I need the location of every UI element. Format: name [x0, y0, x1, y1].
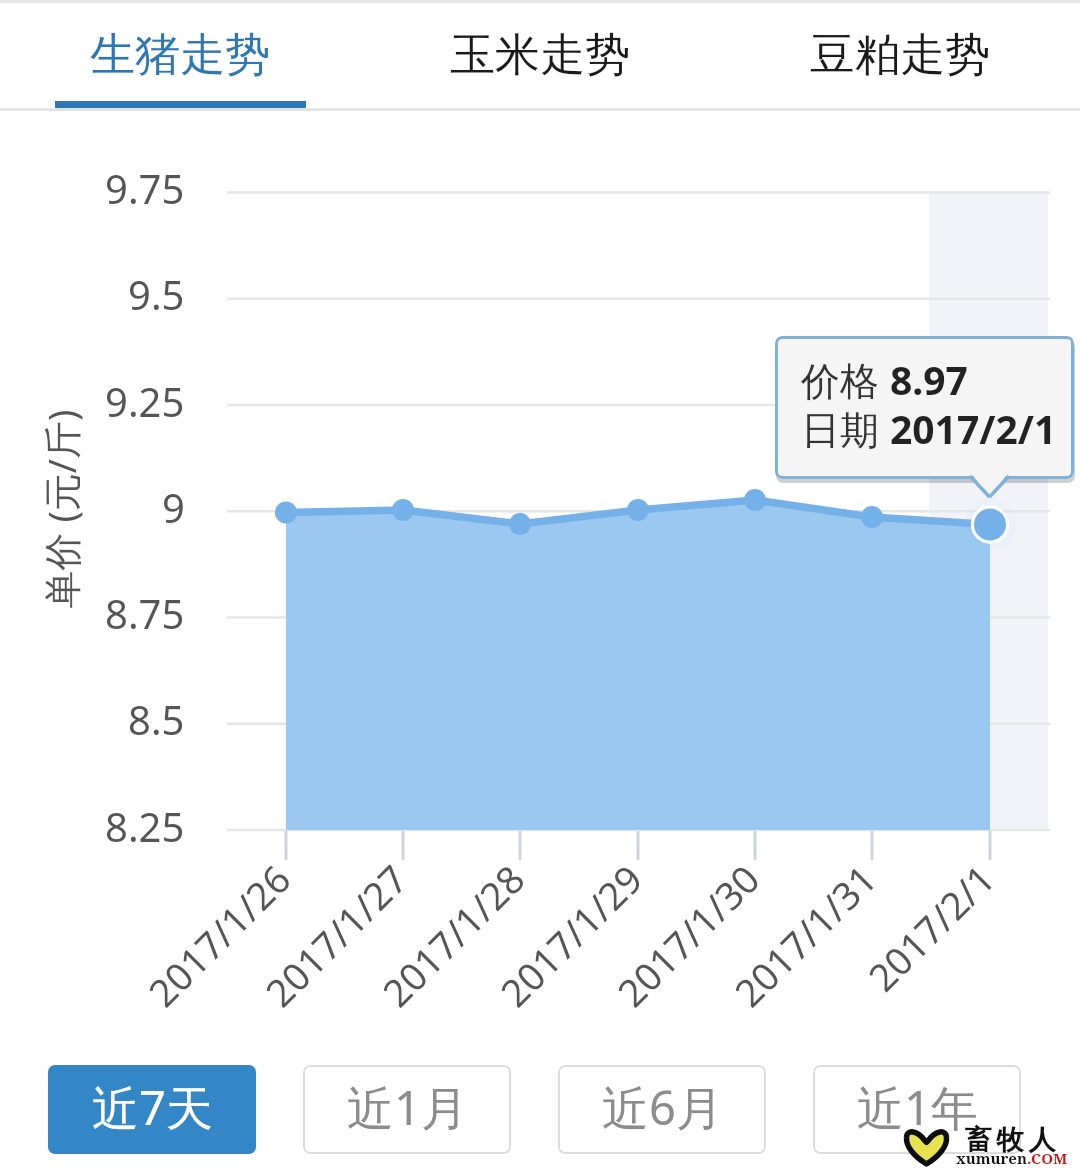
button[interactable]: 近1月 — [303, 1065, 511, 1154]
staticText: 豆粕走势 — [810, 27, 990, 84]
staticText: 近1年 — [857, 1075, 978, 1139]
staticText: 生猪走势 — [90, 27, 270, 84]
button[interactable]: 近1年 — [813, 1065, 1021, 1154]
staticText: xumuren — [956, 1148, 1027, 1168]
staticText: 畜牧人 — [962, 1123, 1058, 1157]
button[interactable]: 近6月 — [558, 1065, 766, 1154]
staticText: 8.97 — [890, 353, 968, 406]
staticText: .COM — [1027, 1148, 1068, 1168]
staticText: 近7天 — [92, 1075, 213, 1139]
staticText: 2017/2/1 — [890, 402, 1057, 455]
staticText: 近6月 — [602, 1075, 723, 1139]
staticText: 价格 — [801, 353, 890, 406]
staticText: 玉米走势 — [450, 27, 630, 84]
button[interactable]: 近7天 — [48, 1065, 256, 1154]
button[interactable]: 豆粕走势 — [720, 0, 1080, 108]
staticText: 近1月 — [347, 1075, 468, 1139]
button[interactable]: 生猪走势 — [0, 0, 360, 108]
button[interactable]: 玉米走势 — [360, 0, 720, 108]
staticText: 日期 — [801, 402, 890, 455]
